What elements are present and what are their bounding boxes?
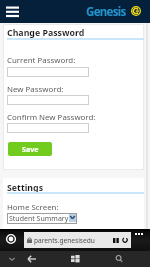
button[interactable]: Start	[71, 255, 80, 262]
button[interactable]	[7, 123, 89, 133]
staticText: Confirm New Password:	[7, 112, 96, 123]
staticText: Settings	[7, 182, 44, 194]
staticText: Change Password	[7, 27, 85, 39]
button[interactable]: Menu	[5, 5, 20, 18]
staticText: Genesis	[86, 4, 126, 20]
staticText: New Password:	[7, 84, 64, 95]
staticText: Home Screen:	[7, 202, 59, 213]
button[interactable]: Save	[8, 142, 52, 156]
button[interactable]	[7, 67, 89, 77]
staticText: Current Password:	[7, 55, 76, 66]
staticText: Student Summary	[9, 214, 69, 224]
button[interactable]: Favorites	[6, 234, 16, 244]
button[interactable]: Hide navigation bar	[7, 255, 17, 263]
staticText: parents.genesisedu	[34, 236, 95, 245]
button[interactable]: Student Summary	[7, 213, 77, 224]
staticText: Save	[22, 144, 39, 154]
button[interactable]: More options	[135, 231, 147, 237]
button[interactable]: Back	[27, 254, 37, 264]
button[interactable]: Search	[115, 255, 124, 264]
button[interactable]	[7, 95, 89, 105]
button[interactable]: parents.genesisedu	[24, 232, 131, 248]
